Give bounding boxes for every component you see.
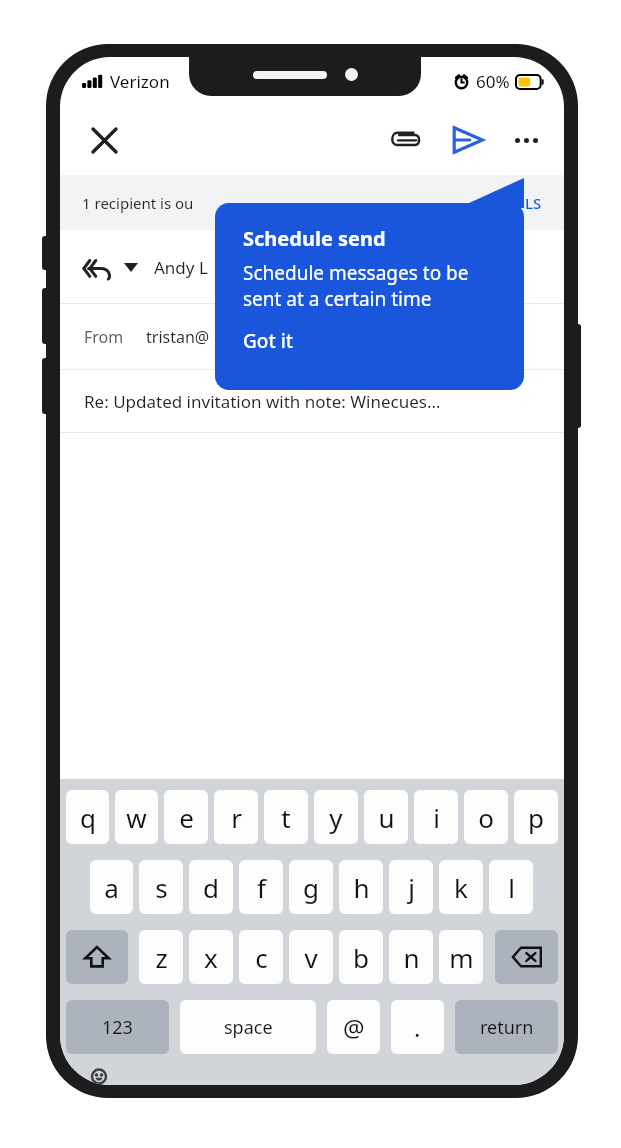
button[interactable]: Close: [80, 116, 128, 164]
button[interactable]: Re: Updated invitation with note: Winecu…: [60, 370, 564, 433]
staticText: tristan@: [146, 326, 210, 348]
staticText: Verizon: [110, 70, 170, 93]
button[interactable]: y: [314, 790, 358, 844]
button[interactable]: space: [180, 1000, 316, 1054]
button[interactable]: Andy L: [60, 230, 564, 304]
staticText: h: [353, 870, 370, 905]
button[interactable]: t: [264, 790, 308, 844]
button[interactable]: i: [414, 790, 458, 844]
button[interactable]: Got it: [243, 328, 294, 354]
button[interactable]: a: [90, 860, 133, 914]
staticText: d: [203, 870, 219, 905]
button[interactable]: f: [239, 860, 283, 914]
staticText: t: [281, 800, 291, 835]
button[interactable]: h: [339, 860, 383, 914]
staticText: o: [478, 800, 494, 835]
staticText: Andy L: [154, 256, 208, 279]
staticText: j: [408, 870, 415, 905]
staticText: 1 recipient is ou: [82, 193, 194, 213]
button[interactable]: b: [339, 930, 383, 984]
staticText: y: [329, 800, 343, 835]
button[interactable]: Send: [444, 116, 492, 164]
staticText: w: [126, 800, 147, 835]
button[interactable]: e: [164, 790, 208, 844]
staticText: z: [155, 940, 168, 975]
staticText: u: [378, 800, 395, 835]
staticText: Schedule send: [243, 225, 386, 252]
button[interactable]: k: [439, 860, 483, 914]
button[interactable]: l: [489, 860, 533, 914]
button[interactable]: u: [364, 790, 408, 844]
staticText: x: [204, 940, 218, 975]
button[interactable]: q: [66, 790, 109, 844]
staticText: n: [403, 940, 420, 975]
button[interactable]: z: [139, 930, 183, 984]
button[interactable]: c: [239, 930, 283, 984]
staticText: .: [414, 1011, 421, 1044]
staticText: k: [454, 870, 468, 905]
button[interactable]: v: [289, 930, 333, 984]
staticText: c: [255, 940, 268, 975]
staticText: Schedule messages to be sent at a certai…: [243, 260, 469, 312]
staticText: b: [353, 940, 369, 975]
button[interactable]: g: [289, 860, 333, 914]
staticText: a: [104, 870, 119, 905]
button[interactable]: From: [60, 304, 564, 370]
button[interactable]: @: [327, 1000, 380, 1054]
staticText: p: [528, 800, 544, 835]
staticText: space: [224, 1015, 273, 1040]
button[interactable]: More options: [502, 116, 550, 164]
button[interactable]: w: [115, 790, 158, 844]
staticText: q: [80, 800, 96, 835]
staticText: Re: Updated invitation with note: Winecu…: [84, 390, 441, 413]
button[interactable]: 1 recipient is ou: [60, 175, 564, 230]
staticText: l: [508, 870, 515, 905]
staticText: m: [449, 940, 474, 975]
staticText: 60%: [476, 70, 510, 93]
staticText: Got it: [243, 328, 294, 354]
button[interactable]: Emoji: [82, 1068, 116, 1085]
staticText: From: [84, 326, 124, 348]
button[interactable]: .: [391, 1000, 444, 1054]
staticText: s: [155, 870, 168, 905]
staticText: f: [257, 870, 266, 905]
button[interactable]: Backspace: [495, 930, 558, 984]
button[interactable]: Attach file: [382, 116, 430, 164]
staticText: v: [304, 940, 318, 975]
staticText: 123: [102, 1015, 133, 1040]
button[interactable]: x: [189, 930, 233, 984]
button[interactable]: 123: [66, 1000, 169, 1054]
staticText: g: [303, 870, 319, 905]
staticText: LS: [525, 193, 542, 213]
staticText: return: [480, 1015, 534, 1040]
button[interactable]: return: [455, 1000, 558, 1054]
staticText: r: [231, 800, 242, 835]
button[interactable]: Shift: [66, 930, 128, 984]
button[interactable]: d: [189, 860, 233, 914]
staticText: i: [433, 800, 440, 835]
button[interactable]: j: [389, 860, 433, 914]
staticText: e: [179, 800, 194, 835]
staticText: @: [343, 1011, 365, 1044]
button[interactable]: m: [439, 930, 483, 984]
button[interactable]: r: [214, 790, 258, 844]
button[interactable]: p: [514, 790, 558, 844]
button[interactable]: o: [464, 790, 508, 844]
button[interactable]: n: [389, 930, 433, 984]
button[interactable]: s: [139, 860, 183, 914]
